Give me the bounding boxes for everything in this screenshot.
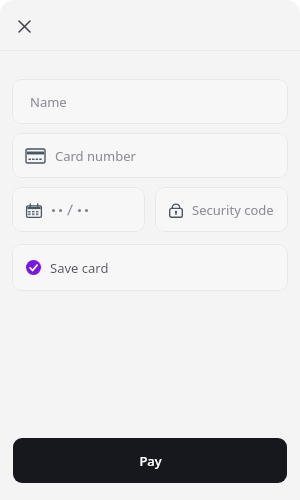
- staticText: Save card: [50, 259, 109, 277]
- staticText: Security code: [192, 201, 274, 219]
- button[interactable]: Security code: [155, 187, 288, 232]
- staticText: Name: [30, 93, 67, 111]
- button[interactable]: Name: [12, 79, 288, 124]
- button[interactable]: Close: [6, 8, 42, 44]
- staticText: Pay: [139, 452, 162, 470]
- staticText: Card number: [55, 147, 136, 165]
- button[interactable]: Save card: [12, 244, 288, 291]
- button[interactable]: Pay: [13, 438, 287, 483]
- button[interactable]: Card number: [12, 133, 288, 178]
- button[interactable]: [12, 187, 145, 232]
